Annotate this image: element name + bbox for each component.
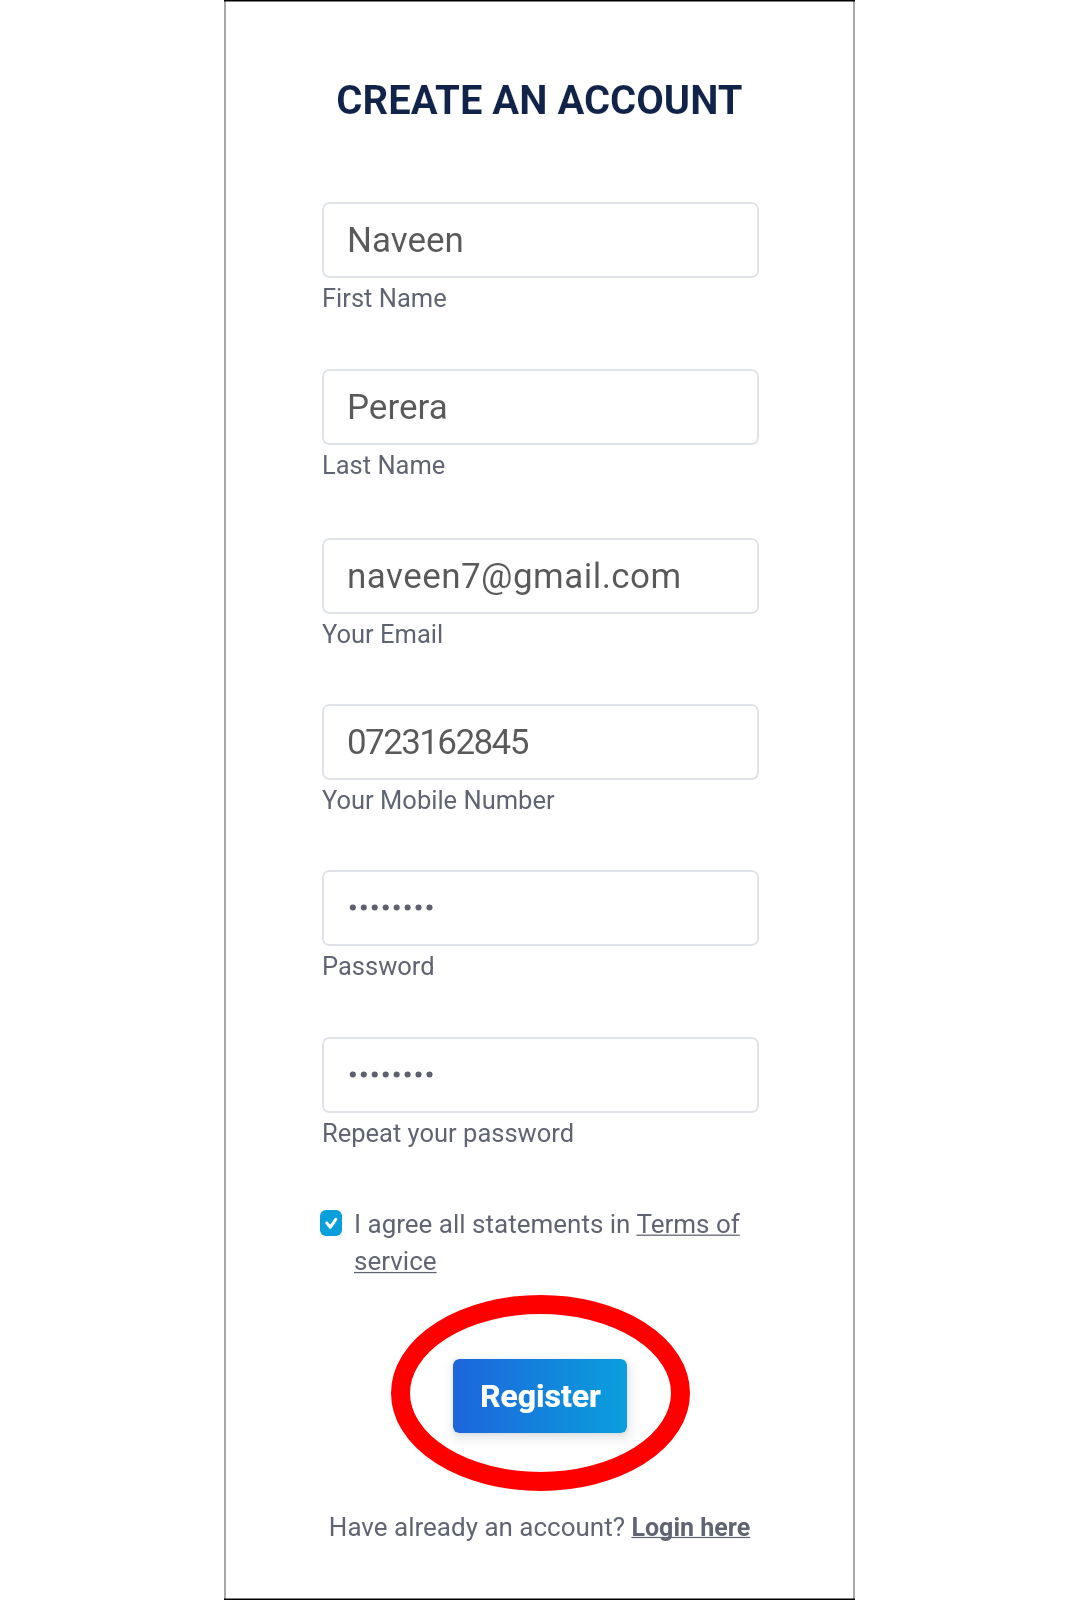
staticText: 0723162845: [347, 722, 528, 763]
button[interactable]: Have already an account? Login here: [224, 1512, 855, 1542]
staticText: Last Name: [322, 450, 446, 480]
staticText: First Name: [322, 283, 447, 313]
other: Agree to terms checkbox: [320, 1210, 342, 1236]
staticText: I agree all statements in Terms of servi…: [354, 1209, 740, 1277]
button[interactable]: Perera: [322, 369, 759, 445]
staticText: Register: [480, 1377, 601, 1415]
staticText: Your Mobile Number: [322, 785, 555, 815]
button[interactable]: Register: [453, 1359, 627, 1433]
staticText: Your Email: [322, 619, 444, 649]
button[interactable]: naveen7@gmail.com: [322, 538, 759, 614]
staticText: CREATE AN ACCOUNT: [224, 77, 855, 124]
staticText: Password: [322, 951, 435, 981]
button[interactable]: Naveen: [322, 202, 759, 278]
button[interactable]: [322, 1037, 759, 1113]
button[interactable]: 0723162845: [322, 704, 759, 780]
staticText: Repeat your password: [322, 1118, 575, 1148]
staticText: Naveen: [347, 220, 464, 261]
staticText: Perera: [347, 387, 448, 428]
button[interactable]: [322, 870, 759, 946]
button[interactable]: Agree to terms checkbox: [320, 1209, 740, 1277]
staticText: naveen7@gmail.com: [347, 556, 682, 597]
